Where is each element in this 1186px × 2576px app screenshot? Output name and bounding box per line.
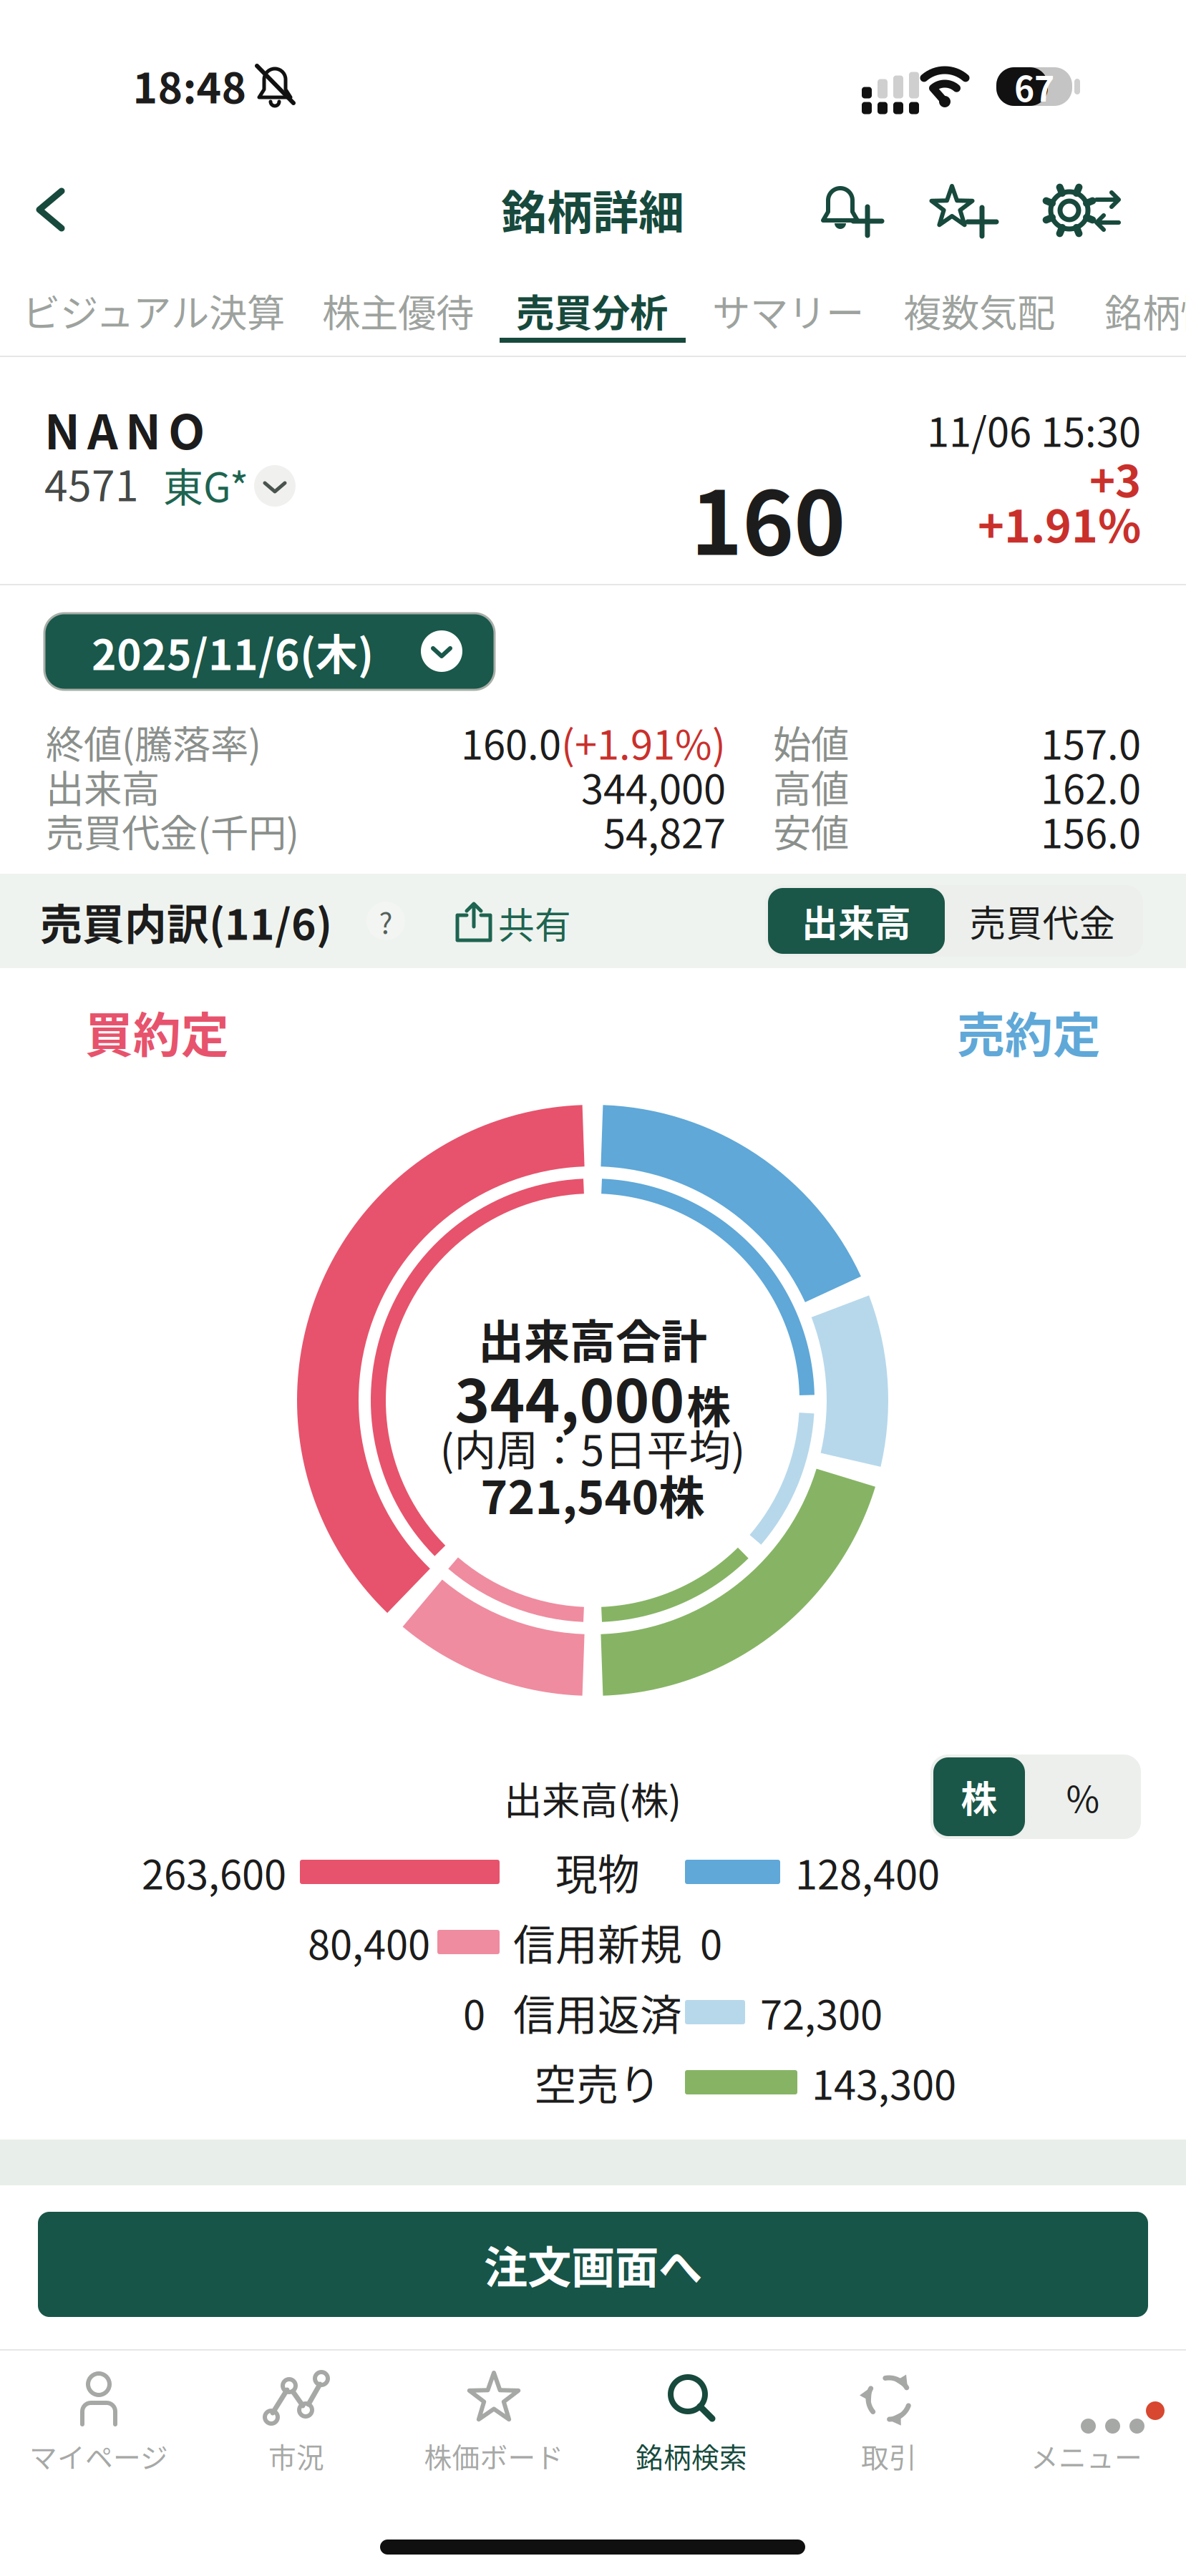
staticText: サマリー <box>712 283 864 338</box>
staticText: 信用新規 <box>513 1912 682 1972</box>
staticText: +3 <box>1089 446 1141 510</box>
staticText: マイページ <box>29 2436 168 2476</box>
staticText: 72,300 <box>760 1983 883 2041</box>
staticText: 取引 <box>861 2436 917 2476</box>
staticText: 344,000 <box>581 757 726 815</box>
staticText: 空売り <box>534 2052 661 2113</box>
staticText: 157.0 <box>1041 713 1141 771</box>
staticText: 263,600 <box>142 1843 286 1901</box>
staticText: +1.91% <box>978 491 1141 555</box>
staticText: 344,000 <box>455 1354 685 1440</box>
staticText: 2025/11/6(木) <box>92 621 374 682</box>
staticText: 銘柄検索 <box>636 2436 747 2476</box>
staticText: 54,827 <box>603 802 726 860</box>
staticText: 出来高合計 <box>478 1305 707 1371</box>
staticText: 160 <box>691 453 845 580</box>
staticText: 終値(騰落率) <box>46 714 261 770</box>
staticText: 18:48 <box>133 55 247 116</box>
staticText: 現物 <box>555 1841 640 1902</box>
staticText: 67 <box>1014 62 1054 111</box>
staticText: 銘柄詳細 <box>501 176 684 242</box>
staticText: 出来高(株) <box>504 1771 681 1826</box>
staticText: 始値 <box>773 714 849 770</box>
staticText: 株主優待 <box>322 283 474 338</box>
staticText: 80,400 <box>308 1913 430 1971</box>
staticText: % <box>1066 1770 1100 1823</box>
staticText: 買約定 <box>85 997 229 1066</box>
staticText: 共有 <box>498 897 571 949</box>
staticText: 売買内訳(11/6) <box>40 891 332 952</box>
staticText: 株 <box>961 1770 997 1823</box>
button[interactable]: 2025/11/6(木) <box>0 0 450 77</box>
staticText: 安値 <box>773 803 849 858</box>
staticText: 4571 <box>44 453 139 513</box>
staticText: 11/06 15:30 <box>927 400 1141 458</box>
staticText: 注文画面へ <box>484 2233 702 2296</box>
staticText: 売約定 <box>957 997 1101 1066</box>
staticText: 128,400 <box>795 1843 940 1901</box>
staticText: 162.0 <box>1041 757 1141 815</box>
staticText: ビジュアル決算 <box>22 283 285 338</box>
staticText: 売買分析 <box>516 283 668 338</box>
staticText: 0 <box>700 1913 722 1971</box>
staticText: 市況 <box>268 2436 324 2476</box>
staticText: 721,540株 <box>481 1461 705 1527</box>
staticText: メニュー <box>1031 2436 1142 2476</box>
button[interactable]: 注文画面へ <box>0 0 1110 105</box>
staticText: 売買代金 <box>969 895 1115 947</box>
staticText: 東G* <box>163 455 248 513</box>
staticText: 143,300 <box>812 2053 956 2111</box>
staticText: 出来高 <box>802 895 911 947</box>
staticText: 信用返済 <box>513 1982 682 2043</box>
staticText: 売買代金(千円) <box>46 803 299 858</box>
staticText: 複数気配 <box>903 283 1055 338</box>
staticText: NANO <box>44 394 205 463</box>
staticText: (内周：5日平均) <box>440 1417 745 1478</box>
staticText: 高値 <box>773 759 849 814</box>
staticText: ? <box>379 900 393 942</box>
staticText: (+1.91%) <box>561 713 726 771</box>
staticText: 株価ボード <box>424 2436 564 2476</box>
staticText: 株 <box>687 1372 730 1436</box>
staticText: 銘柄情報 <box>1104 283 1186 338</box>
staticText: 156.0 <box>1041 802 1141 860</box>
staticText: 0 <box>463 1983 485 2041</box>
staticText: 出来高 <box>46 759 160 814</box>
staticText: 160.0 <box>461 713 561 771</box>
